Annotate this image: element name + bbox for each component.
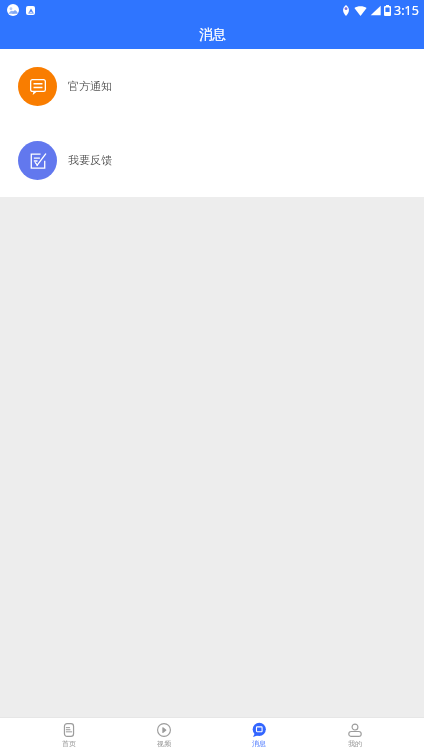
staticText: 消息 [252,739,266,748]
staticText: 我的 [348,739,362,748]
button[interactable]: Home [21,718,116,752]
button[interactable]: 官方通知 [0,49,424,123]
staticText: 官方通知 [68,79,112,93]
button[interactable]: Profile [307,718,403,752]
button[interactable]: Messages [211,718,307,752]
staticText: 3:15 [394,2,419,19]
staticText: 消息 [199,26,226,43]
staticText: 首页 [62,739,76,748]
button[interactable]: 我要反馈 [0,123,424,197]
staticText: 视频 [157,739,171,748]
button[interactable]: Video [116,718,211,752]
staticText: 我要反馈 [68,153,112,167]
